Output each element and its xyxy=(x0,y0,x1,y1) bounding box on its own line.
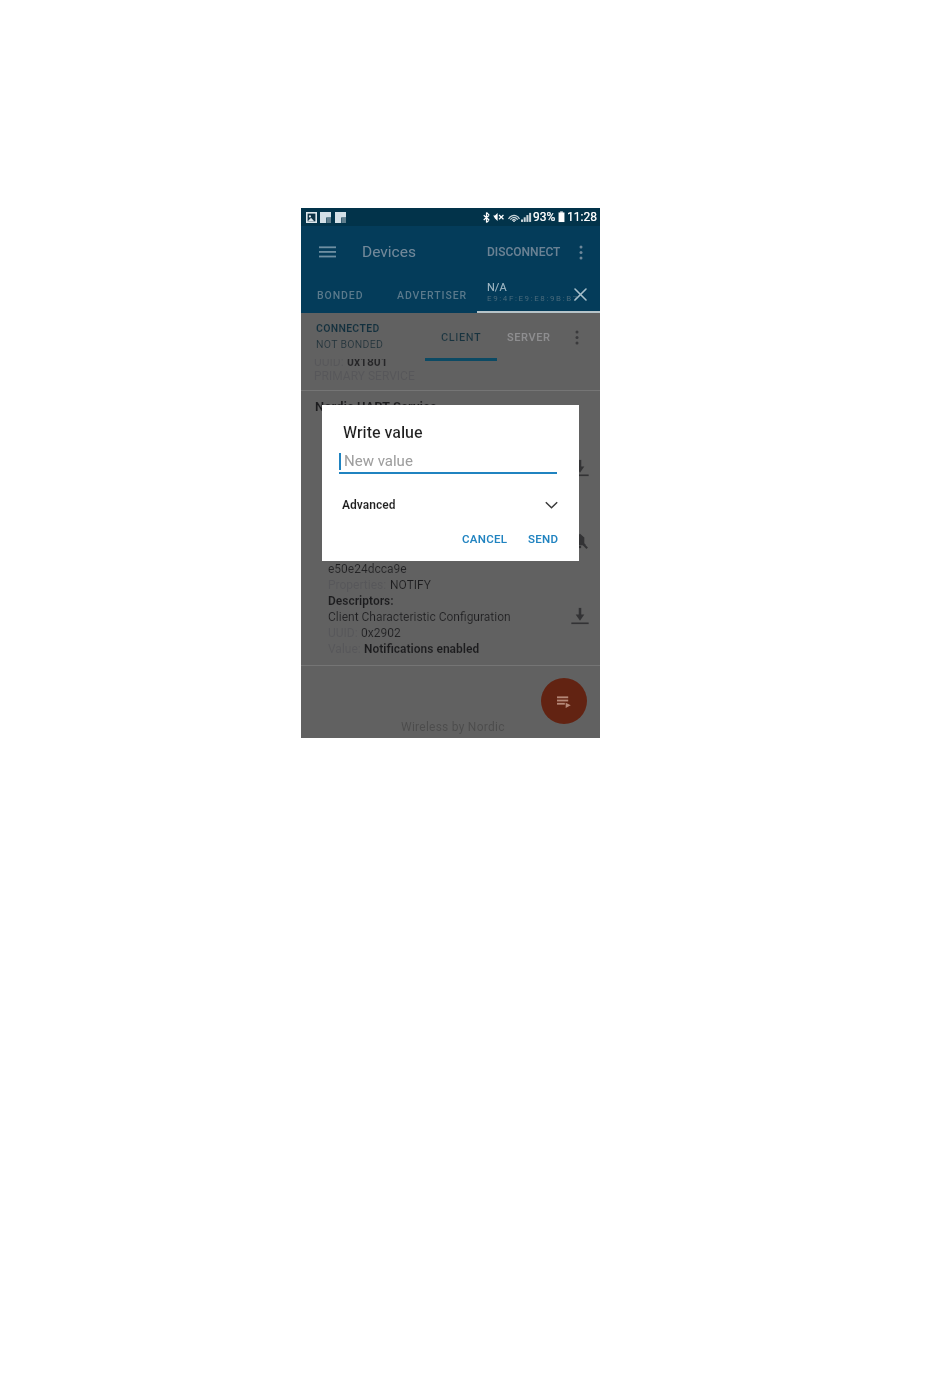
staticText: Client Characteristic Configuration xyxy=(328,610,511,624)
staticText: Write value xyxy=(343,423,423,442)
staticText: N/A xyxy=(487,281,507,294)
button[interactable]: Advanced xyxy=(342,493,558,516)
staticText: Advanced xyxy=(342,498,396,512)
staticText: CANCEL xyxy=(462,532,508,545)
button[interactable]: More options xyxy=(570,241,592,263)
button[interactable]: SEND xyxy=(522,527,565,549)
staticText: New value xyxy=(344,452,413,470)
button[interactable]: DISCONNECT xyxy=(483,237,565,267)
staticText: e50e24dcca9e xyxy=(328,562,407,576)
staticText: 11:28 xyxy=(567,210,597,224)
button[interactable]: CLIENT xyxy=(431,325,492,349)
button[interactable]: Close device tab xyxy=(571,285,589,303)
staticText: Devices xyxy=(362,243,416,261)
staticText: NOT BONDED xyxy=(316,338,384,350)
button[interactable]: N/A xyxy=(484,272,600,313)
button[interactable]: ADVERTISER xyxy=(379,272,484,313)
button[interactable]: Read descriptor value xyxy=(569,605,591,627)
staticText: CLIENT xyxy=(441,331,482,344)
staticText: Wireless by Nordic xyxy=(401,720,505,734)
staticText: SERVER xyxy=(507,331,551,344)
button[interactable]: Send data xyxy=(541,678,587,724)
button[interactable]: More options xyxy=(565,325,588,349)
button[interactable]: BONDED xyxy=(301,272,379,313)
button[interactable]: Disable notifications xyxy=(569,530,591,552)
staticText: 0x1801 xyxy=(347,355,388,369)
button[interactable]: CANCEL xyxy=(456,527,514,549)
button[interactable]: Open navigation drawer xyxy=(315,240,339,264)
staticText: E9:4F:E9:E8:9B:B7 xyxy=(487,294,579,303)
staticText: NOTIFY xyxy=(390,578,431,592)
staticText: UUID: xyxy=(328,626,361,640)
staticText: CONNECTED xyxy=(316,322,380,334)
button[interactable]: Read characteristic value xyxy=(569,457,591,479)
button[interactable]: SERVER xyxy=(497,325,560,349)
staticText: Value: xyxy=(328,642,364,656)
staticText: Descriptors: xyxy=(328,594,394,608)
staticText: Properties: xyxy=(328,578,390,592)
staticText: SEND xyxy=(528,532,559,545)
staticText: ADVERTISER xyxy=(397,289,467,301)
staticText: DISCONNECT xyxy=(487,245,561,259)
staticText: Notifications enabled xyxy=(364,642,480,656)
staticText: BONDED xyxy=(317,289,364,301)
staticText: 0x2902 xyxy=(361,626,401,640)
staticText: PRIMARY SERVICE xyxy=(314,369,415,383)
staticText: Nordic UART Service xyxy=(315,399,437,414)
staticText: 93% xyxy=(533,210,556,224)
